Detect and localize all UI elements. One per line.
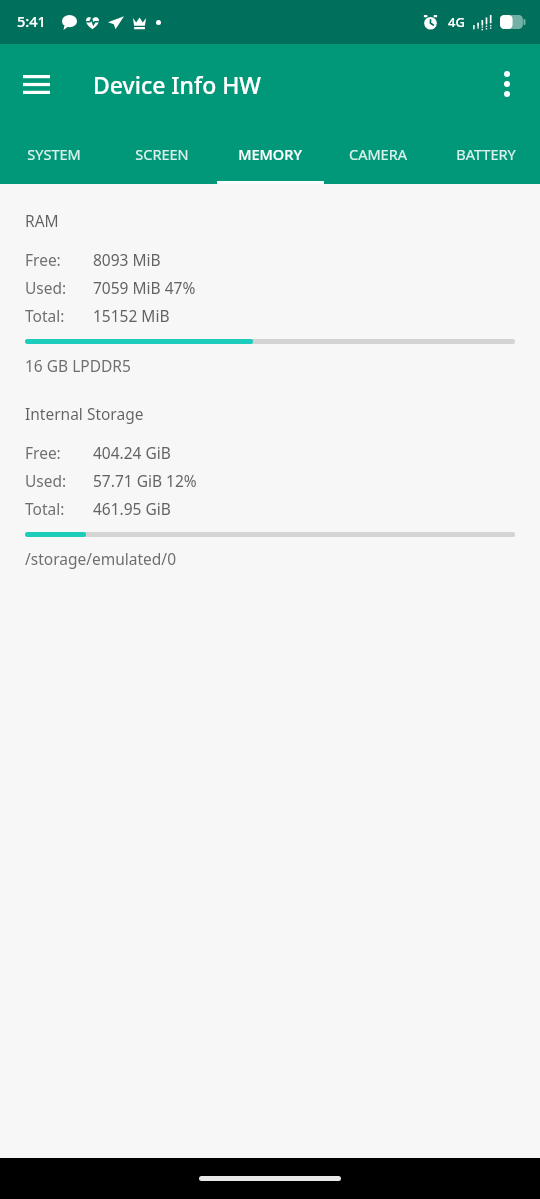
- staticText: Device Info HW: [93, 69, 262, 100]
- button[interactable]: MEMORY: [216, 124, 324, 184]
- staticText: Free:: [25, 249, 93, 270]
- staticText: BATTERY: [456, 144, 516, 164]
- staticText: 57.71 GiB 12%: [93, 470, 197, 491]
- button[interactable]: SYSTEM: [0, 124, 108, 184]
- staticText: 5:41: [17, 11, 46, 31]
- button[interactable]: SCREEN: [108, 124, 216, 184]
- button[interactable]: Open navigation menu: [10, 58, 62, 110]
- staticText: Used:: [25, 470, 93, 491]
- staticText: 404.24 GiB: [93, 442, 171, 463]
- staticText: 16 GB LPDDR5: [25, 355, 131, 376]
- staticText: 8093 MiB: [93, 249, 161, 270]
- button[interactable]: CAMERA: [324, 124, 432, 184]
- staticText: 7059 MiB 47%: [93, 277, 196, 298]
- staticText: 15152 MiB: [93, 305, 170, 326]
- staticText: CAMERA: [349, 144, 407, 164]
- button[interactable]: BATTERY: [432, 124, 540, 184]
- staticText: 461.95 GiB: [93, 498, 171, 519]
- staticText: RAM: [25, 210, 59, 231]
- staticText: Used:: [25, 277, 93, 298]
- staticText: 4G: [448, 13, 465, 31]
- button[interactable]: More options: [482, 59, 532, 109]
- staticText: Free:: [25, 442, 93, 463]
- staticText: Internal Storage: [25, 403, 144, 424]
- staticText: SYSTEM: [27, 144, 81, 164]
- staticText: Total:: [25, 305, 93, 326]
- staticText: Total:: [25, 498, 93, 519]
- staticText: MEMORY: [238, 144, 302, 164]
- staticText: SCREEN: [135, 144, 189, 164]
- staticText: /storage/emulated/0: [25, 548, 177, 569]
